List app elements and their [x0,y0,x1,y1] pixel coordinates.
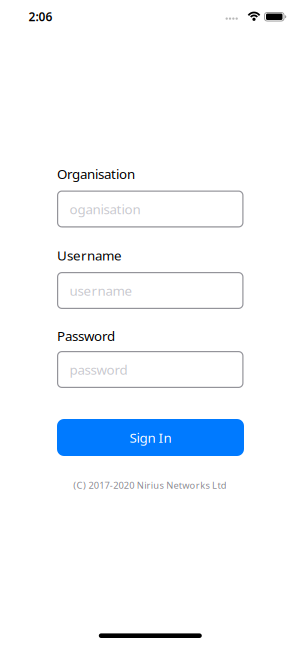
button[interactable]: username [57,272,243,309]
button[interactable]: oganisation [57,190,243,227]
button[interactable]: password [57,351,243,388]
staticText: password [69,361,127,378]
staticText: 2:06 [28,9,52,25]
staticText: Organisation [57,165,135,183]
staticText: Username [57,246,122,264]
staticText: (C) 2017-2020 Nirius Networks Ltd [73,479,227,491]
button[interactable]: Sign In [57,419,244,456]
staticText: username [69,282,132,299]
staticText: oganisation [69,200,140,218]
staticText: Sign In [129,429,171,446]
staticText: Password [57,327,115,345]
